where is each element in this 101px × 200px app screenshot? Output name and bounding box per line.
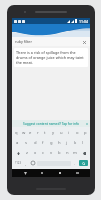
- staticText: Suggest content named? Tap for info: [23, 122, 80, 126]
- button[interactable]: f: [39, 138, 47, 148]
- staticText: d: [34, 140, 37, 146]
- staticText: m: [73, 150, 77, 156]
- button[interactable]: Back: [21, 169, 29, 177]
- button[interactable]: p: [81, 128, 89, 138]
- button[interactable]: x: [31, 148, 39, 158]
- staticText: f: [42, 140, 44, 146]
- button[interactable]: h: [55, 138, 63, 148]
- staticText: b: [58, 150, 61, 156]
- button[interactable]: b: [55, 148, 63, 158]
- staticText: s: [25, 140, 28, 146]
- button[interactable]: u: [57, 128, 65, 138]
- staticText: y: [52, 130, 55, 136]
- button[interactable]: ?123: [13, 159, 23, 167]
- button[interactable]: There is a risk of spillage from the dru…: [14, 48, 88, 67]
- staticText: w: [22, 130, 26, 136]
- button[interactable]: i: [65, 128, 73, 138]
- staticText: x: [34, 150, 37, 156]
- button[interactable]: m: [71, 148, 79, 158]
- staticText: r: [37, 130, 39, 136]
- button[interactable]: Search: [79, 160, 88, 166]
- button[interactable]: e: [27, 128, 34, 138]
- staticText: z: [26, 150, 28, 156]
- button[interactable]: q: [13, 128, 20, 138]
- staticText: ,: [25, 161, 27, 166]
- staticText: i: [68, 130, 70, 136]
- button[interactable]: o: [73, 128, 81, 138]
- staticText: v: [50, 150, 53, 156]
- staticText: .: [74, 161, 76, 166]
- button[interactable]: d: [31, 138, 39, 148]
- button[interactable]: Comma: [23, 159, 29, 167]
- button[interactable]: z: [23, 148, 31, 158]
- staticText: ruby filter: [15, 39, 32, 44]
- button[interactable]: a: [13, 138, 22, 148]
- staticText: u: [60, 130, 63, 136]
- button[interactable]: Emoji: [29, 159, 36, 167]
- button[interactable]: n: [63, 148, 71, 158]
- staticText: g: [50, 140, 53, 146]
- staticText: c: [42, 150, 45, 156]
- button[interactable]: Clear: [81, 39, 87, 45]
- staticText: p: [84, 130, 87, 136]
- button[interactable]: Menu: [73, 169, 81, 177]
- button[interactable]: ruby filter: [12, 37, 90, 46]
- staticText: n: [66, 150, 69, 156]
- button[interactable]: r: [34, 128, 41, 138]
- button[interactable]: Shift: [13, 148, 23, 158]
- staticText: e: [29, 130, 32, 136]
- staticText: a: [16, 140, 19, 146]
- button[interactable]: Home: [38, 169, 46, 177]
- staticText: t: [44, 130, 46, 136]
- staticText: h: [58, 140, 61, 146]
- button[interactable]: j: [63, 138, 71, 148]
- button[interactable]: t: [41, 128, 49, 138]
- button[interactable]: Recents: [56, 169, 64, 177]
- button[interactable]: w: [20, 128, 27, 138]
- staticText: l: [82, 140, 84, 146]
- staticText: q: [15, 130, 18, 136]
- staticText: o: [76, 130, 79, 136]
- staticText: There is a risk of spillage from the dru…: [16, 50, 86, 65]
- button[interactable]: Suggest content named? Tap for info: [12, 120, 90, 127]
- staticText: 11:04: [79, 19, 88, 24]
- button[interactable]: c: [39, 148, 47, 158]
- button[interactable]: Period: [72, 159, 78, 167]
- button[interactable]: k: [71, 138, 79, 148]
- button[interactable]: l: [79, 138, 87, 148]
- staticText: j: [66, 140, 68, 146]
- button[interactable]: s: [22, 138, 31, 148]
- button[interactable]: v: [47, 148, 55, 158]
- staticText: k: [74, 140, 77, 146]
- staticText: ?123: [15, 161, 22, 165]
- button[interactable]: y: [49, 128, 57, 138]
- button[interactable]: g: [47, 138, 55, 148]
- button[interactable]: Backspace: [79, 148, 89, 158]
